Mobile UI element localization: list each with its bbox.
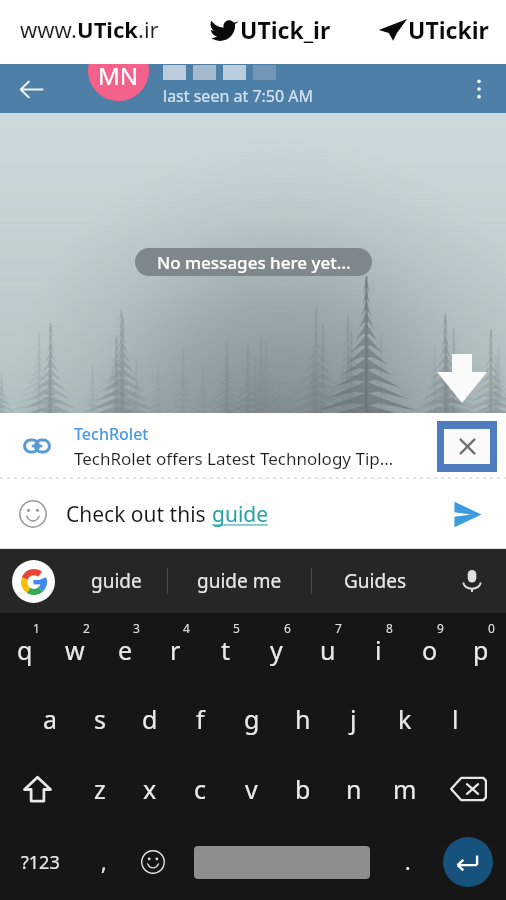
button[interactable]: More options	[457, 67, 501, 111]
button[interactable]: j	[328, 684, 379, 754]
button[interactable]: Profile	[88, 64, 149, 101]
staticText: v	[245, 772, 258, 806]
button[interactable]: Back	[9, 67, 53, 111]
staticText: 1	[33, 620, 40, 636]
staticText: 3	[133, 620, 140, 636]
button[interactable]: x	[125, 754, 175, 824]
staticText: guide	[212, 500, 269, 529]
staticText: UTickir	[408, 14, 489, 45]
button[interactable]: f	[175, 684, 226, 754]
button[interactable]: ?123	[0, 824, 80, 900]
button[interactable]: b	[277, 754, 328, 824]
staticText: o	[422, 633, 438, 667]
button[interactable]: Send	[428, 479, 506, 549]
button[interactable]: ,	[80, 824, 128, 900]
button[interactable]: guide me	[168, 549, 311, 613]
button[interactable]: s	[75, 684, 125, 754]
button[interactable]: t	[200, 613, 251, 684]
staticText: 9	[437, 620, 444, 636]
button[interactable]: e	[100, 613, 150, 684]
button[interactable]: q	[0, 613, 50, 684]
button[interactable]: Close link preview	[444, 429, 490, 464]
staticText: j	[350, 702, 357, 736]
staticText: 6	[284, 620, 291, 636]
staticText: 2	[83, 620, 90, 636]
button[interactable]: i	[353, 613, 404, 684]
staticText: .ir	[138, 14, 159, 44]
staticText: b	[295, 772, 311, 806]
staticText: 8	[386, 620, 393, 636]
staticText: d	[142, 702, 158, 736]
button[interactable]: z	[75, 754, 125, 824]
staticText: e	[118, 633, 133, 667]
button[interactable]: a	[25, 684, 75, 754]
button[interactable]: Shift	[0, 754, 75, 824]
staticText: last seen at 7:50 AM	[163, 85, 314, 107]
button[interactable]: l	[430, 684, 481, 754]
staticText: p	[473, 633, 489, 667]
button[interactable]: No messages here yet...	[135, 248, 372, 276]
staticText: a	[43, 702, 58, 736]
button[interactable]: r	[150, 613, 200, 684]
button[interactable]: h	[277, 684, 328, 754]
button[interactable]: k	[379, 684, 430, 754]
staticText: r	[170, 633, 181, 667]
staticText: z	[94, 772, 106, 806]
button[interactable]: Voice input	[437, 549, 506, 613]
button[interactable]: Google search	[0, 549, 66, 613]
button[interactable]: guide	[66, 549, 167, 613]
staticText: 7	[335, 620, 342, 636]
staticText: x	[143, 772, 157, 806]
button[interactable]: v	[226, 754, 277, 824]
staticText: m	[393, 772, 417, 806]
button[interactable]: g	[226, 684, 277, 754]
staticText: Guides	[344, 568, 406, 594]
staticText: l	[452, 702, 459, 736]
staticText: www.	[20, 14, 77, 44]
button[interactable]: Enter	[430, 824, 506, 900]
button[interactable]: c	[175, 754, 226, 824]
button[interactable]: n	[328, 754, 379, 824]
staticText: w	[65, 633, 85, 667]
staticText: TechRolet offers Latest Technology Tip…	[74, 447, 394, 470]
staticText: UTick_ir	[240, 14, 331, 45]
button[interactable]: .	[386, 824, 430, 900]
button[interactable]: Emoji	[0, 479, 66, 549]
button[interactable]: w	[50, 613, 100, 684]
button[interactable]: Guides	[312, 549, 437, 613]
staticText: .	[405, 848, 411, 877]
button[interactable]: Emoji keyboard	[128, 824, 178, 900]
staticText: g	[244, 702, 260, 736]
staticText: ?123	[21, 850, 60, 875]
staticText: i	[375, 633, 382, 667]
button[interactable]: Backspace	[430, 754, 506, 824]
staticText: UTick	[77, 14, 138, 44]
button[interactable]: d	[125, 684, 175, 754]
staticText: k	[398, 702, 412, 736]
button[interactable]: y	[251, 613, 302, 684]
staticText: c	[194, 772, 207, 806]
staticText: 5	[233, 620, 240, 636]
staticText: y	[270, 633, 283, 667]
staticText: 4	[183, 620, 190, 636]
button[interactable]: u	[302, 613, 353, 684]
staticText: ,	[101, 848, 107, 877]
staticText: No messages here yet...	[157, 251, 351, 274]
staticText: h	[295, 702, 311, 736]
staticText: TechRolet	[74, 423, 149, 445]
staticText: t	[221, 633, 231, 667]
staticText: q	[17, 633, 33, 667]
button[interactable]: m	[379, 754, 430, 824]
staticText: 0	[488, 620, 495, 636]
button[interactable]: Scroll to bottom	[437, 353, 487, 403]
button[interactable]: Space	[178, 824, 386, 900]
button[interactable]: p	[455, 613, 506, 684]
staticText: Check out this	[66, 500, 212, 529]
staticText: s	[94, 702, 106, 736]
staticText: f	[196, 702, 205, 736]
staticText: MN	[98, 64, 139, 92]
staticText: n	[346, 772, 362, 806]
button[interactable]: o	[404, 613, 455, 684]
staticText: guide	[91, 568, 142, 594]
staticText: guide me	[197, 568, 282, 594]
